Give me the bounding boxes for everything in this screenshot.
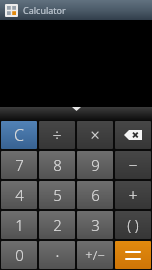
button[interactable]: +/−	[77, 241, 113, 269]
staticText: +	[128, 184, 138, 206]
staticText: 8	[53, 155, 62, 175]
button[interactable]: 5	[39, 181, 75, 209]
button[interactable]: Decimal point	[39, 241, 75, 269]
staticText: ·	[55, 243, 60, 268]
staticText: ×	[90, 124, 100, 146]
button[interactable]: 3	[77, 211, 113, 239]
button[interactable]: 7	[1, 151, 37, 179]
button[interactable]: Multiply	[77, 121, 113, 149]
staticText: 2	[53, 215, 62, 235]
button[interactable]: 4	[1, 181, 37, 209]
button[interactable]: Backspace	[115, 121, 151, 149]
button[interactable]: 8	[39, 151, 75, 179]
staticText: C	[14, 124, 24, 146]
staticText: 4	[15, 185, 24, 205]
staticText: 7	[15, 155, 24, 175]
button[interactable]: 9	[77, 151, 113, 179]
button[interactable]: Equals	[115, 241, 151, 269]
button[interactable]: 2	[39, 211, 75, 239]
button[interactable]: Plus	[115, 181, 151, 209]
button[interactable]: 6	[77, 181, 113, 209]
staticText: ( )	[127, 216, 139, 235]
staticText: 6	[91, 185, 100, 205]
staticText: 1	[15, 215, 24, 235]
other: Calculator icon	[7, 6, 16, 15]
button[interactable]: C	[1, 121, 37, 149]
button[interactable]: Hide keypad	[0, 107, 152, 120]
staticText: ÷	[52, 124, 62, 146]
button[interactable]: ( )	[115, 211, 151, 239]
staticText: 3	[91, 215, 100, 235]
staticText: −	[128, 154, 138, 176]
button[interactable]: 1	[1, 211, 37, 239]
staticText: 0	[15, 245, 24, 265]
button[interactable]: Divide	[39, 121, 75, 149]
staticText: +/−	[85, 246, 105, 264]
button[interactable]: Minus	[115, 151, 151, 179]
staticText: 9	[91, 155, 100, 175]
button[interactable]: 0	[1, 241, 37, 269]
staticText: 5	[53, 185, 62, 205]
staticText: Calculator	[23, 4, 66, 16]
